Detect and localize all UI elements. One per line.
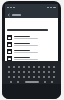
button[interactable]: Back: [7, 13, 11, 17]
button[interactable]: [5, 55, 58, 61]
button[interactable]: [5, 48, 58, 55]
button[interactable]: [5, 34, 58, 41]
button[interactable]: [5, 41, 58, 48]
